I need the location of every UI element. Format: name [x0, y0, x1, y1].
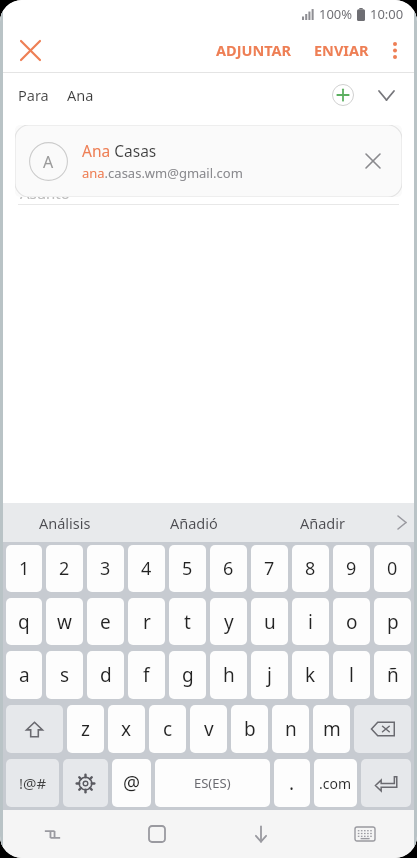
staticText: e — [100, 609, 111, 635]
staticText: 0 — [387, 556, 398, 581]
button[interactable]: ADJUNTAR — [208, 32, 300, 68]
staticText: d — [100, 662, 112, 688]
staticText: s — [60, 662, 70, 688]
button[interactable]: 4 — [128, 545, 165, 592]
staticText: n — [285, 716, 297, 742]
button[interactable]: c — [149, 705, 186, 753]
button[interactable]: y — [210, 598, 247, 645]
staticText: w — [57, 609, 72, 635]
staticText: @ — [123, 770, 141, 796]
button[interactable]: Shift — [6, 705, 63, 753]
button[interactable]: 7 — [251, 545, 288, 592]
staticText: t — [184, 609, 191, 635]
button[interactable]: g — [169, 651, 206, 699]
button[interactable]: l — [333, 651, 370, 699]
button[interactable]: s — [46, 651, 83, 699]
button[interactable]: h — [210, 651, 247, 699]
staticText: g — [182, 662, 194, 688]
staticText: Ana — [67, 85, 94, 105]
button[interactable]: t — [169, 598, 206, 645]
button[interactable]: i — [292, 598, 329, 645]
staticText: Asunto — [20, 183, 70, 203]
staticText: 1 — [19, 556, 30, 581]
button[interactable]: f — [128, 651, 165, 699]
button[interactable]: 8 — [292, 545, 329, 592]
button[interactable]: u — [251, 598, 288, 645]
button[interactable]: b — [231, 705, 268, 753]
button[interactable]: 6 — [210, 545, 247, 592]
staticText: ana.casas.wm@gmail.com — [82, 164, 243, 182]
button[interactable]: v — [190, 705, 227, 753]
button[interactable]: Close — [10, 30, 50, 70]
staticText: Para — [18, 85, 49, 105]
button[interactable]: j — [251, 651, 288, 699]
staticText: !@# — [19, 773, 47, 793]
button[interactable]: o — [333, 598, 370, 645]
button[interactable]: q — [6, 598, 42, 645]
button[interactable]: !@# — [6, 759, 59, 807]
button[interactable]: .com — [314, 759, 357, 807]
staticText: x — [121, 716, 132, 742]
button[interactable]: Hide keyboard — [209, 810, 313, 858]
staticText: 9 — [346, 556, 357, 581]
button[interactable]: e — [87, 598, 124, 645]
button[interactable]: @ — [112, 759, 151, 807]
staticText: j — [267, 662, 272, 688]
button[interactable]: Keyboard — [313, 810, 417, 858]
button[interactable]: k — [292, 651, 329, 699]
staticText: z — [81, 716, 90, 742]
button[interactable]: a — [6, 651, 42, 699]
button[interactable]: p — [374, 598, 411, 645]
button[interactable]: Settings — [63, 759, 108, 807]
button[interactable]: m — [313, 705, 350, 753]
staticText: c — [163, 716, 173, 742]
staticText: k — [305, 662, 316, 688]
button[interactable]: ñ — [374, 651, 411, 699]
staticText: 2 — [59, 556, 70, 581]
button[interactable]: Añadir — [258, 503, 387, 542]
button[interactable]: Add recipient — [331, 83, 355, 107]
button[interactable]: 2 — [46, 545, 83, 592]
staticText: p — [387, 609, 399, 635]
button[interactable]: A — [15, 125, 402, 197]
button[interactable]: ENVIAR — [306, 32, 377, 68]
staticText: l — [349, 662, 354, 688]
staticText: Añadir — [300, 513, 346, 533]
button[interactable]: . — [274, 759, 310, 807]
button[interactable]: Backspace — [354, 705, 411, 753]
button[interactable]: ES(ES) — [155, 759, 270, 807]
button[interactable]: w — [46, 598, 83, 645]
staticText: Añadió — [170, 513, 218, 533]
staticText: Análisis — [39, 513, 91, 533]
button[interactable]: 3 — [87, 545, 124, 592]
staticText: .com — [319, 774, 352, 793]
button[interactable]: r — [128, 598, 165, 645]
button[interactable]: More suggestions — [387, 503, 417, 542]
button[interactable]: Home — [105, 810, 209, 858]
button[interactable]: More options — [377, 32, 413, 68]
staticText: ES(ES) — [194, 774, 231, 792]
button[interactable]: Añadió — [129, 503, 258, 542]
button[interactable]: d — [87, 651, 124, 699]
button[interactable]: x — [108, 705, 145, 753]
button[interactable]: 5 — [169, 545, 206, 592]
button[interactable]: z — [67, 705, 104, 753]
button[interactable]: 0 — [374, 545, 411, 592]
button[interactable]: 1 — [6, 545, 42, 592]
staticText: A — [43, 151, 54, 173]
button[interactable]: 9 — [333, 545, 370, 592]
staticText: m — [323, 716, 341, 742]
staticText: 100% — [319, 5, 353, 23]
staticText: 8 — [305, 556, 316, 581]
button[interactable]: Remove recipient — [358, 146, 388, 176]
button[interactable]: n — [272, 705, 309, 753]
button[interactable]: Expand — [373, 82, 399, 108]
button[interactable]: Recents — [0, 810, 105, 858]
staticText: 5 — [182, 556, 193, 581]
staticText: Ana Casas — [82, 140, 157, 161]
button[interactable]: Enter — [361, 759, 411, 807]
staticText: o — [346, 609, 358, 635]
staticText: b — [244, 716, 256, 742]
staticText: q — [18, 609, 30, 635]
button[interactable]: Análisis — [0, 503, 129, 542]
